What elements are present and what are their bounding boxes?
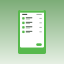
button[interactable] (20, 25, 44, 30)
button[interactable] (20, 21, 44, 25)
button[interactable] (20, 30, 44, 34)
button[interactable] (20, 16, 44, 21)
button[interactable] (36, 43, 42, 46)
